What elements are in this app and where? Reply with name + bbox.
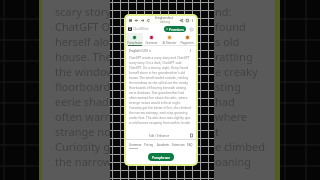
staticText: Premium xyxy=(169,27,184,32)
staticText: s old xyxy=(215,34,240,49)
button[interactable]: Paraphrase xyxy=(148,153,174,161)
staticText: ChatGPT wrote a scary story and ChatGPT … xyxy=(129,56,193,60)
staticText: AI Detector xyxy=(162,41,177,45)
staticText: the narrow xyxy=(55,154,112,169)
button[interactable]: Paraphraser xyxy=(126,33,143,46)
staticText: a cold breeze escaping from within. Insi… xyxy=(129,121,191,125)
button[interactable]: Edit / Enhance xyxy=(126,132,196,139)
staticText: nd: xyxy=(215,4,232,19)
button[interactable]: FAQ xyxy=(187,143,193,147)
staticText: ChatGFT O xyxy=(55,19,111,34)
staticText: Paraphraser xyxy=(127,41,143,45)
staticText: Curiosity got the better of her, she cli… xyxy=(129,106,191,110)
staticText: scary story xyxy=(55,4,111,19)
staticText: often warn xyxy=(55,109,112,124)
staticText: t xyxy=(215,124,219,139)
staticText: strange no xyxy=(55,124,111,139)
button[interactable]: Menu xyxy=(127,17,133,23)
button[interactable]: More xyxy=(188,48,193,53)
button[interactable]: Plagiarism xyxy=(178,33,196,46)
button[interactable]: Account xyxy=(188,26,194,32)
staticText: e creaky xyxy=(215,64,258,79)
staticText: often warned her about this attic, where xyxy=(129,96,188,100)
staticText: herself alone in her grandmother's old xyxy=(129,71,186,75)
staticText: e climbed xyxy=(215,139,266,154)
button[interactable]: Extension xyxy=(172,143,185,147)
staticText: the window xyxy=(55,64,115,79)
staticText: Edit / Enhance xyxy=(149,134,170,138)
staticText: house. The xyxy=(55,49,112,64)
staticText: eerie shadows. Text grandmother had xyxy=(129,91,185,95)
button[interactable]: Premium xyxy=(164,26,186,32)
staticText: strange noises would echo at night. xyxy=(129,101,181,105)
button[interactable]: Tabs xyxy=(184,17,190,23)
button[interactable]: Pricing xyxy=(144,143,154,147)
staticText: where xyxy=(215,109,248,124)
staticText: floorboards of flooring beneath casting xyxy=(129,86,187,90)
staticText: English (US) xyxy=(129,48,148,53)
staticText: the narrow stairway, each step groaning xyxy=(129,111,188,115)
staticText: house. The wind howled outside, rattling xyxy=(129,76,189,80)
button[interactable]: More options xyxy=(190,18,195,23)
staticText: Plagiarism xyxy=(180,41,194,45)
staticText: ChatGPT. On a stormy night, Kerry found xyxy=(129,66,189,70)
staticText: herself alo xyxy=(55,34,110,49)
staticText: Paraphrase xyxy=(152,155,171,160)
staticText: scary story: On a dark, ChatGPT said xyxy=(129,61,182,65)
button[interactable]: Academic xyxy=(157,143,170,147)
staticText: fenglonshu.t xyxy=(155,16,174,20)
staticText: under foot. The attic door was slightly … xyxy=(129,116,191,120)
staticText: had xyxy=(215,94,235,109)
staticText: Curiosity g xyxy=(55,139,111,154)
staticText: sting xyxy=(215,79,241,94)
staticText: found xyxy=(215,19,246,34)
button[interactable]: Refresh xyxy=(145,17,151,23)
staticText: floorboard xyxy=(55,79,111,94)
staticText: rattling xyxy=(215,49,253,64)
staticText: oaning xyxy=(215,154,252,169)
staticText: edit.org xyxy=(160,20,170,24)
button[interactable]: Grammar xyxy=(129,143,142,147)
button[interactable]: Back xyxy=(133,17,139,23)
staticText: the windows as she called out the creaky xyxy=(129,81,189,85)
staticText: QuillBot xyxy=(133,26,149,32)
button[interactable]: Forward xyxy=(139,17,145,23)
staticText: eerie shad xyxy=(55,94,109,109)
button[interactable]: English (US) xyxy=(129,48,151,53)
button[interactable]: Share xyxy=(178,17,184,23)
staticText: Grammar Checker xyxy=(143,41,160,45)
button[interactable]: AI Detector xyxy=(160,33,178,46)
button[interactable]: Grammar Checker xyxy=(143,33,160,46)
